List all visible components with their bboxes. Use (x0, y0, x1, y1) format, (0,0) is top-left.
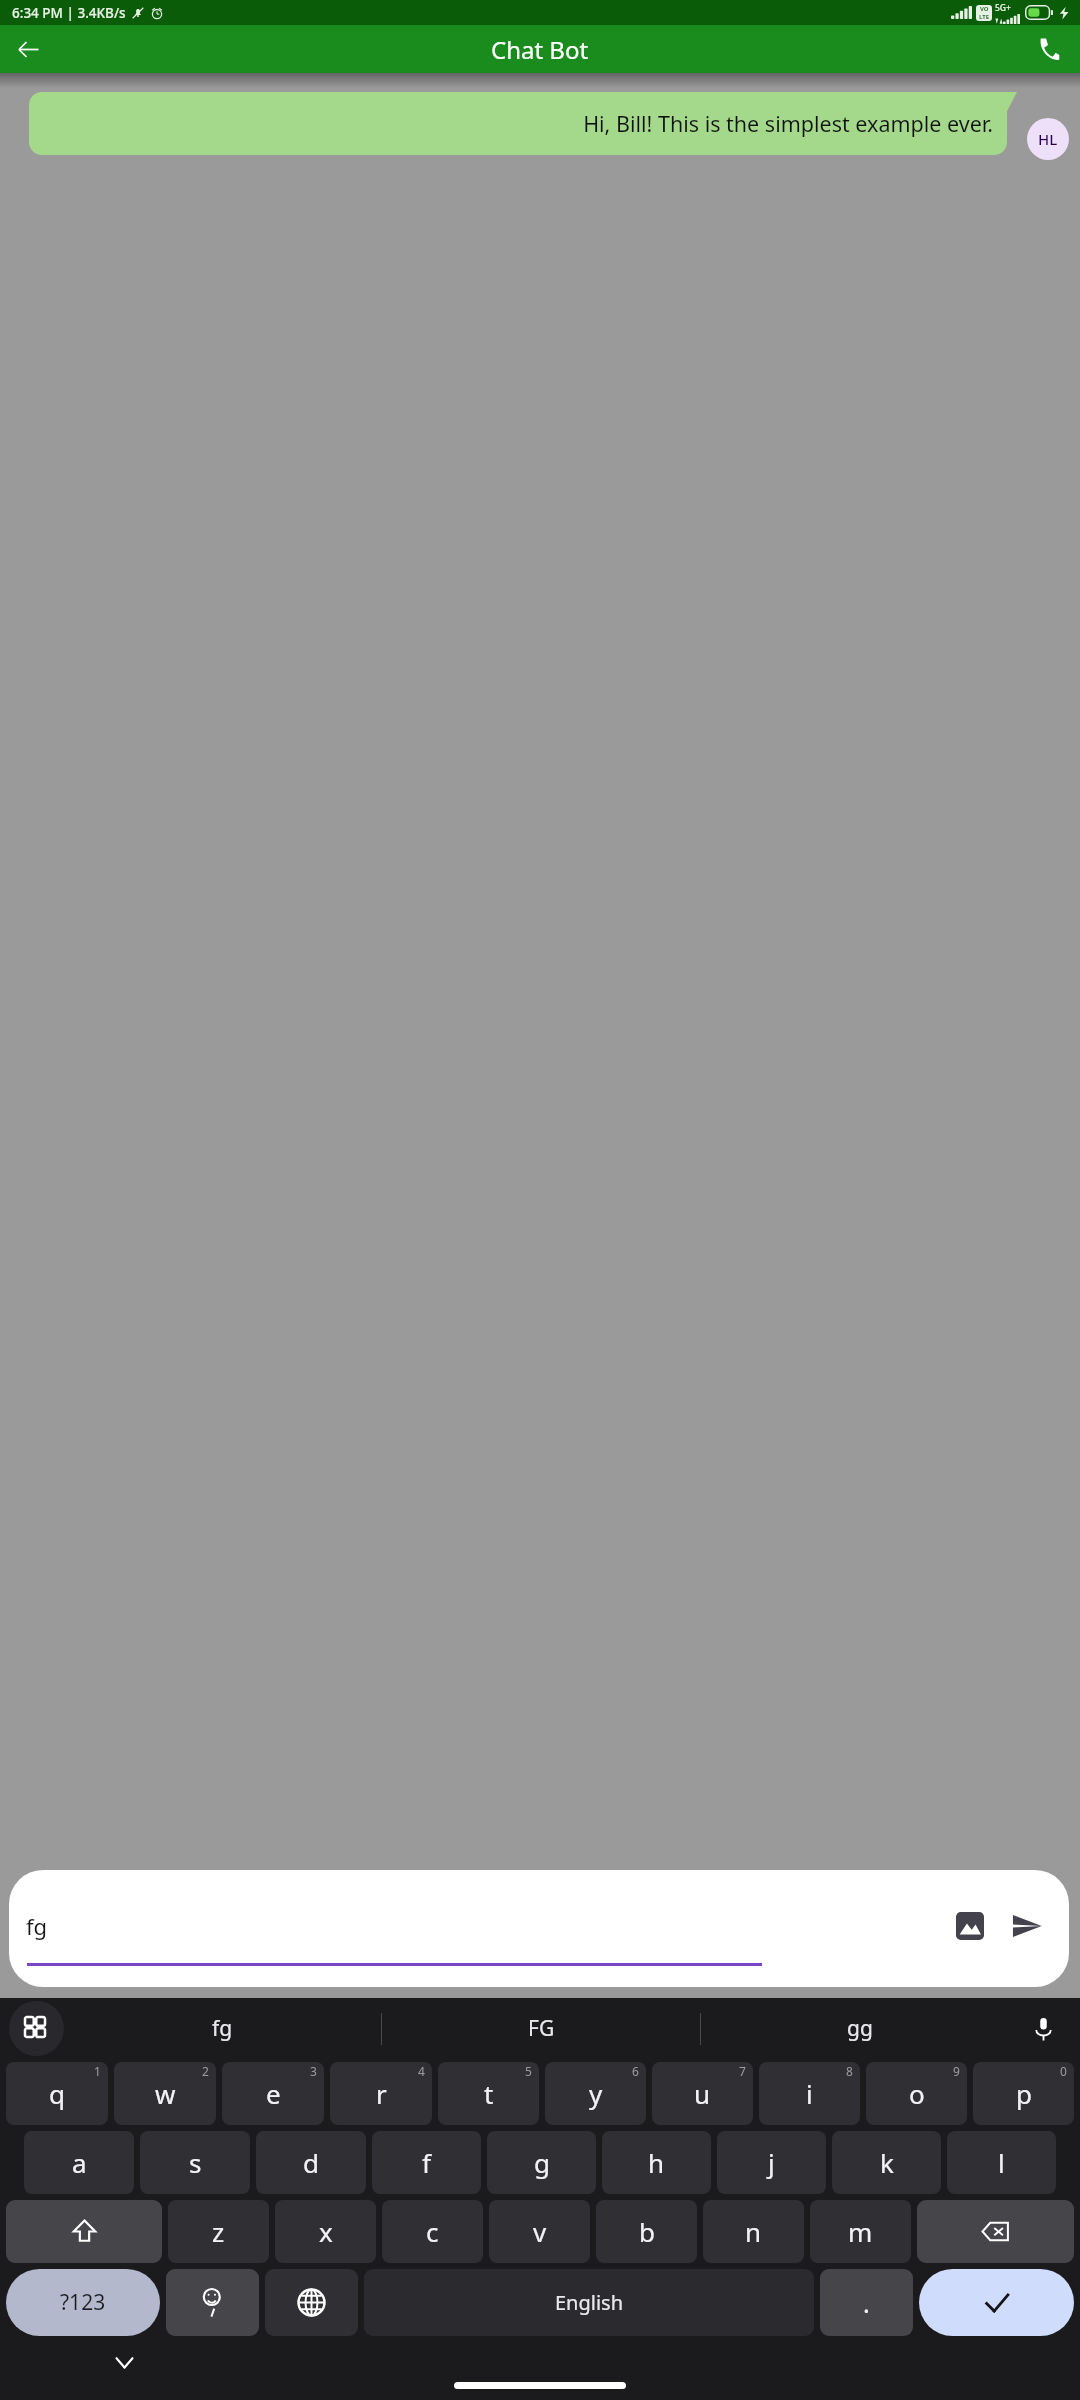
staticText: y (589, 2076, 603, 2111)
staticText: FG (528, 2014, 555, 2043)
button[interactable]: z (168, 2200, 269, 2263)
staticText: 9 (953, 2063, 960, 2079)
button[interactable]: fg (64, 1998, 381, 2059)
button[interactable]: m (810, 2200, 911, 2263)
button[interactable]: s (140, 2131, 250, 2194)
button[interactable]: j (717, 2131, 826, 2194)
button[interactable]: i (759, 2062, 860, 2125)
button[interactable]: Shift (6, 2200, 162, 2263)
staticText: 5 (525, 2063, 532, 2079)
staticText: fg (26, 1911, 48, 1941)
staticText: VO (980, 5, 989, 13)
staticText: t (484, 2076, 494, 2111)
staticText: i (806, 2076, 813, 2111)
staticText: f (422, 2145, 431, 2180)
staticText: x (319, 2214, 333, 2249)
staticText: p (1016, 2076, 1032, 2111)
button[interactable]: d (256, 2131, 366, 2194)
button[interactable]: g (487, 2131, 596, 2194)
staticText: 2 (202, 2063, 209, 2079)
button[interactable]: Emoji (166, 2269, 259, 2336)
staticText: . (863, 2286, 870, 2320)
button[interactable]: b (596, 2200, 697, 2263)
staticText: m (848, 2214, 873, 2249)
staticText: q (49, 2076, 65, 2111)
button[interactable]: Keyboard options (9, 2001, 64, 2056)
staticText: 4 (418, 2063, 425, 2079)
staticText: e (266, 2076, 281, 2111)
button[interactable]: o (866, 2062, 967, 2125)
staticText: j (768, 2145, 775, 2180)
staticText: l (998, 2145, 1005, 2180)
button[interactable]: English (364, 2269, 814, 2336)
button[interactable]: Back (5, 26, 51, 72)
button[interactable]: q (6, 2062, 108, 2125)
button[interactable]: a (24, 2131, 134, 2194)
button[interactable]: k (832, 2131, 941, 2194)
staticText: fg (212, 2014, 233, 2043)
button[interactable]: . (820, 2269, 913, 2336)
button[interactable]: FG (382, 1998, 700, 2059)
staticText: 5G+ (995, 2, 1011, 14)
staticText: b (639, 2214, 655, 2249)
staticText: 6:34 PM | 3.4KB/s (12, 4, 126, 22)
button[interactable]: gg (701, 1998, 1019, 2059)
button[interactable]: w (114, 2062, 216, 2125)
staticText: 3 (310, 2063, 317, 2079)
staticText: a (72, 2145, 87, 2180)
staticText: r (376, 2076, 387, 2111)
staticText: LTE (979, 13, 990, 21)
staticText: 6 (632, 2063, 639, 2079)
button[interactable]: l (947, 2131, 1056, 2194)
staticText: k (880, 2145, 894, 2180)
button[interactable]: Hi, Bill! This is the simplest example e… (29, 92, 1007, 155)
button[interactable]: t (438, 2062, 539, 2125)
button[interactable]: Hide keyboard (104, 2342, 144, 2382)
button[interactable]: y (545, 2062, 646, 2125)
button[interactable]: p (973, 2062, 1074, 2125)
staticText: gg (847, 2014, 873, 2043)
staticText: g (534, 2145, 550, 2180)
button[interactable]: Send (1004, 1903, 1050, 1949)
staticText: Hi, Bill! This is the simplest example e… (43, 109, 993, 138)
button[interactable]: Backspace (917, 2200, 1074, 2263)
button[interactable]: v (489, 2200, 590, 2263)
staticText: English (555, 2289, 624, 2316)
staticText: 8 (846, 2063, 853, 2079)
button[interactable]: n (703, 2200, 804, 2263)
button[interactable]: Call (1025, 26, 1071, 72)
staticText: v (533, 2214, 547, 2249)
staticText: Chat Bot (491, 33, 589, 66)
staticText: 1 (94, 2063, 101, 2079)
staticText: 0 (1060, 2063, 1067, 2079)
staticText: h (648, 2145, 665, 2180)
button[interactable]: f (372, 2131, 481, 2194)
button[interactable]: Attach image (948, 1904, 992, 1948)
button[interactable]: r (330, 2062, 432, 2125)
button[interactable]: fg (26, 1911, 48, 1941)
button[interactable]: ?123 (6, 2269, 160, 2336)
button[interactable]: HL (1027, 118, 1069, 160)
button[interactable]: c (382, 2200, 483, 2263)
staticText: ?123 (60, 2288, 106, 2317)
button[interactable]: h (602, 2131, 711, 2194)
staticText: c (426, 2214, 439, 2249)
button[interactable]: u (652, 2062, 753, 2125)
staticText: o (909, 2076, 925, 2111)
staticText: w (155, 2076, 176, 2111)
button[interactable]: Voice input (1019, 2005, 1067, 2053)
staticText: HL (1038, 129, 1058, 149)
staticText: d (303, 2145, 319, 2180)
staticText: u (694, 2076, 711, 2111)
button[interactable]: Enter (919, 2269, 1074, 2336)
staticText: n (745, 2214, 762, 2249)
button[interactable]: x (275, 2200, 376, 2263)
button[interactable]: e (222, 2062, 324, 2125)
staticText: z (212, 2214, 225, 2249)
button[interactable]: Change language (265, 2269, 358, 2336)
staticText: s (189, 2145, 202, 2180)
staticText: 7 (739, 2063, 746, 2079)
